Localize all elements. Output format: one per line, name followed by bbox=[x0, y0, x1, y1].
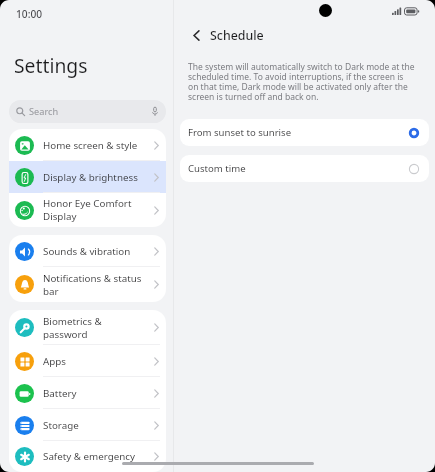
staticText: Display & brightness bbox=[43, 171, 143, 184]
staticText: Apps bbox=[43, 355, 143, 368]
button[interactable]: Safety & emergency bbox=[9, 441, 166, 472]
button[interactable]: Custom time bbox=[180, 155, 429, 182]
button[interactable]: From sunset to sunrise bbox=[180, 119, 429, 146]
button[interactable]: Apps bbox=[9, 345, 166, 377]
staticText: Schedule bbox=[210, 27, 264, 44]
button[interactable]: Home screen & style bbox=[9, 129, 166, 161]
staticText: Biometrics & password bbox=[43, 315, 143, 341]
staticText: Storage bbox=[43, 419, 143, 432]
staticText: Honor Eye Comfort Display bbox=[43, 197, 143, 223]
staticText: 10:00 bbox=[16, 7, 43, 21]
button[interactable]: Notifications & status bar bbox=[9, 267, 166, 302]
staticText: Safety & emergency bbox=[43, 450, 143, 463]
staticText: From sunset to sunrise bbox=[188, 126, 408, 139]
staticText: Battery bbox=[43, 387, 143, 400]
button[interactable]: Back bbox=[186, 25, 206, 45]
staticText: The system will automatically switch to … bbox=[188, 61, 415, 103]
button[interactable]: Search bbox=[9, 100, 166, 123]
staticText: Custom time bbox=[188, 162, 408, 175]
staticText: Notifications & status bar bbox=[43, 272, 143, 298]
button[interactable]: Display & brightness bbox=[9, 161, 166, 193]
button[interactable]: Honor Eye Comfort Display bbox=[9, 193, 166, 227]
staticText: Settings bbox=[14, 52, 88, 78]
button[interactable]: Sounds & vibration bbox=[9, 235, 166, 267]
button[interactable]: Biometrics & password bbox=[9, 310, 166, 345]
button[interactable]: Battery bbox=[9, 377, 166, 409]
staticText: Home screen & style bbox=[43, 139, 143, 152]
staticText: Sounds & vibration bbox=[43, 245, 143, 258]
button[interactable]: Storage bbox=[9, 409, 166, 441]
staticText: Search bbox=[29, 105, 59, 118]
